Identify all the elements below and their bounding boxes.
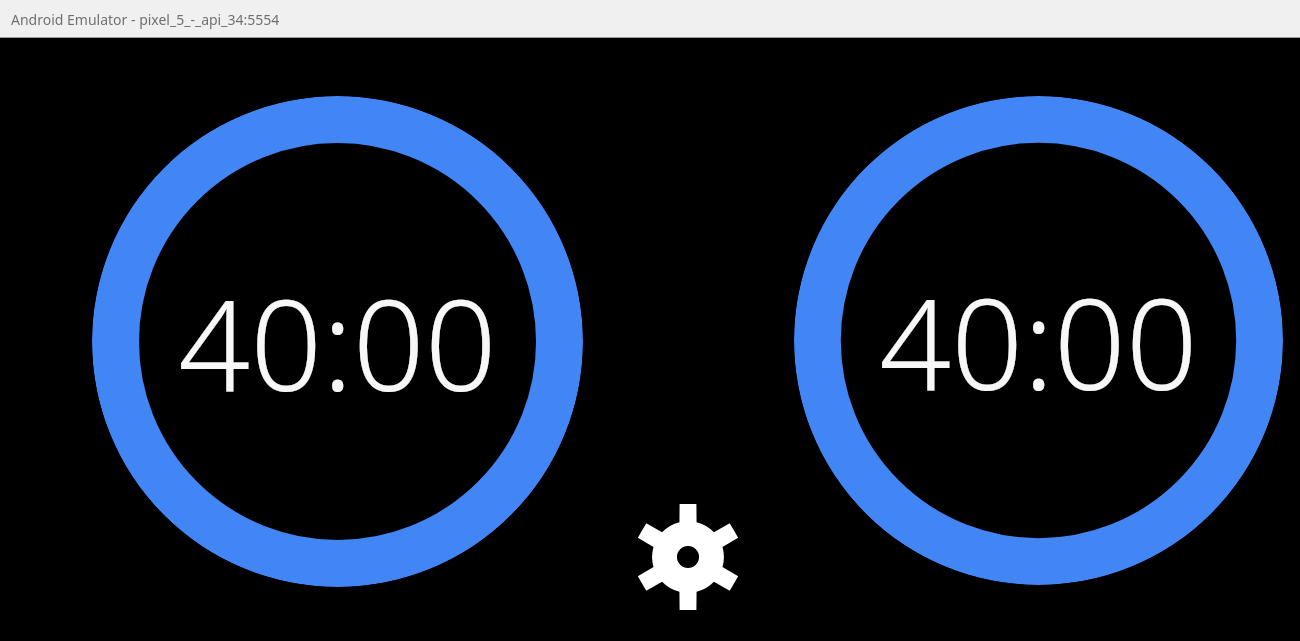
button[interactable]: Settings — [634, 503, 742, 611]
staticText: Android Emulator - pixel_5_-_api_34:5554 — [11, 10, 280, 29]
button[interactable]: 40:00 — [92, 96, 583, 587]
button[interactable]: 40:00 — [794, 96, 1283, 585]
staticText: 40:00 — [879, 255, 1198, 427]
staticText: 40:00 — [178, 256, 497, 428]
